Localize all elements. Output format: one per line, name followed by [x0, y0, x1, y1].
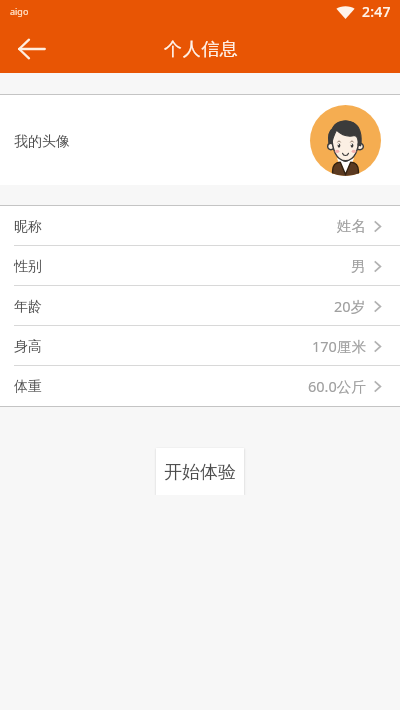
staticText: 男 [351, 257, 366, 275]
staticText: 体重 [14, 378, 42, 396]
staticText: 性别 [14, 258, 42, 276]
staticText: 昵称 [14, 218, 42, 236]
staticText: 我的头像 [14, 133, 70, 151]
button[interactable]: 我的头像 [0, 95, 400, 185]
button[interactable]: 昵称 [0, 206, 400, 245]
staticText: 姓名 [337, 217, 366, 235]
staticText: 170厘米 [312, 336, 366, 356]
staticText: 开始体验 [164, 461, 236, 484]
staticText: 60.0公斤 [308, 376, 366, 396]
staticText: 身高 [14, 338, 42, 356]
button[interactable]: 体重 [0, 366, 400, 406]
staticText: 20岁 [334, 296, 366, 316]
staticText: aigo [10, 5, 29, 17]
button[interactable]: 开始体验 [156, 448, 244, 495]
button[interactable]: Back [10, 27, 53, 71]
staticText: 2:47 [362, 2, 391, 21]
button[interactable]: 年龄 [0, 286, 400, 325]
button[interactable]: 性别 [0, 246, 400, 285]
button[interactable]: 身高 [0, 326, 400, 365]
staticText: 个人信息 [164, 38, 239, 61]
staticText: 年龄 [14, 298, 42, 316]
